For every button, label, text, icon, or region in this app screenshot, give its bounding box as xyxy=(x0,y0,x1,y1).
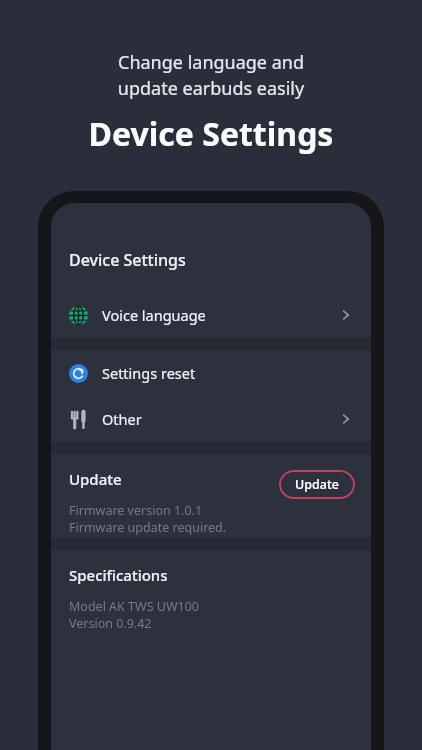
button[interactable]: Other settings xyxy=(51,396,371,442)
staticText: Update xyxy=(69,469,122,489)
staticText: Voice language xyxy=(102,305,339,325)
button[interactable]: Settings reset xyxy=(51,350,371,396)
button[interactable]: Update xyxy=(279,470,355,499)
staticText: Change language and update earbuds easil… xyxy=(20,50,402,100)
other: Voice language xyxy=(69,306,88,325)
staticText: Settings reset xyxy=(102,363,353,383)
other: Settings reset xyxy=(69,364,88,383)
staticText: Specifications xyxy=(69,565,168,585)
staticText: Model AK TWS UW100 Version 0.9.42 xyxy=(69,598,199,632)
staticText: Device Settings xyxy=(69,249,186,271)
staticText: Firmware version 1.0.1 Firmware update r… xyxy=(69,502,227,536)
other: Other settings xyxy=(69,410,88,429)
button[interactable]: Voice language xyxy=(51,292,371,338)
staticText: Update xyxy=(295,476,339,493)
staticText: Device Settings xyxy=(12,112,410,156)
staticText: Other xyxy=(102,409,339,429)
